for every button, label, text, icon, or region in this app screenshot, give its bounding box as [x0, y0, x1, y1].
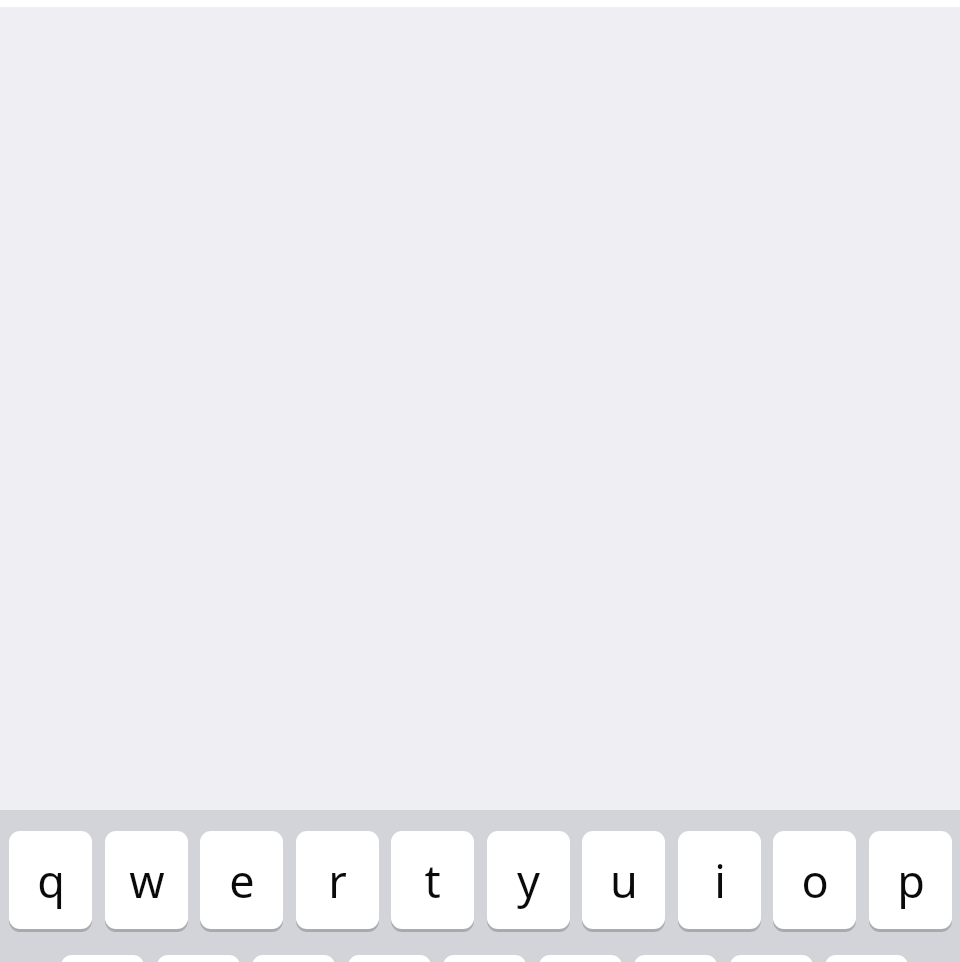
- button[interactable]: f: [348, 955, 431, 962]
- button[interactable]: y: [487, 831, 570, 929]
- button[interactable]: u: [582, 831, 665, 929]
- button[interactable]: a: [61, 955, 144, 962]
- staticText: u: [610, 850, 638, 911]
- button[interactable]: e: [200, 831, 283, 929]
- button[interactable]: s: [157, 955, 240, 962]
- staticText: y: [517, 850, 540, 911]
- staticText: o: [801, 850, 829, 911]
- button[interactable]: i: [678, 831, 761, 929]
- staticText: i: [714, 850, 726, 911]
- staticText: e: [229, 850, 255, 911]
- staticText: p: [897, 850, 925, 911]
- button[interactable]: w: [105, 831, 188, 929]
- button[interactable]: k: [730, 955, 813, 962]
- button[interactable]: p: [869, 831, 952, 929]
- staticText: r: [328, 850, 347, 911]
- button[interactable]: l: [825, 955, 908, 962]
- button[interactable]: d: [252, 955, 335, 962]
- button[interactable]: o: [773, 831, 856, 929]
- button[interactable]: g: [443, 955, 526, 962]
- button[interactable]: t: [391, 831, 474, 929]
- button[interactable]: h: [539, 955, 622, 962]
- button[interactable]: j: [634, 955, 717, 962]
- staticText: w: [129, 850, 165, 911]
- button[interactable]: q: [9, 831, 92, 929]
- button[interactable]: r: [296, 831, 379, 929]
- staticText: t: [424, 850, 441, 911]
- staticText: q: [37, 850, 65, 911]
